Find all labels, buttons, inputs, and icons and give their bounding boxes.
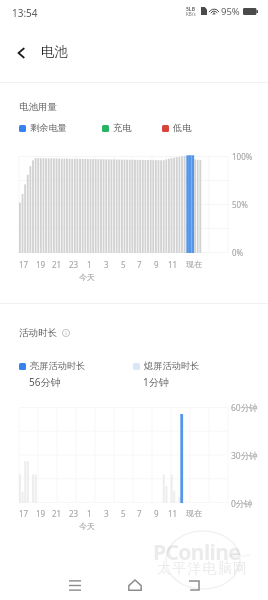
button[interactable]: Back: [179, 570, 209, 600]
staticText: PConline: [153, 538, 241, 567]
staticText: 11: [168, 508, 178, 519]
staticText: KB/s: [186, 11, 196, 17]
staticText: 3: [104, 508, 109, 519]
staticText: 17: [19, 508, 29, 519]
staticText: 现在: [186, 508, 202, 518]
staticText: 亮屏活动时长: [30, 360, 86, 372]
staticText: 13:54: [12, 6, 38, 20]
staticText: 电池用量: [19, 101, 57, 113]
staticText: 30分钟: [231, 450, 258, 462]
staticText: .com.cn: [228, 551, 250, 559]
staticText: 剩余电量: [30, 122, 67, 134]
staticText: 9: [154, 508, 159, 519]
staticText: 19: [36, 259, 46, 270]
staticText: 1: [87, 259, 92, 270]
staticText: 9: [154, 259, 159, 270]
staticText: 7: [137, 508, 142, 519]
staticText: 5LB: [186, 6, 195, 13]
staticText: 3: [104, 259, 109, 270]
staticText: 11: [168, 259, 178, 270]
staticText: 21: [52, 508, 62, 519]
staticText: 50%: [232, 199, 248, 210]
staticText: 95%: [221, 5, 240, 18]
staticText: 今天: [79, 272, 95, 282]
staticText: 活动时长: [19, 327, 57, 339]
staticText: 0%: [232, 247, 244, 258]
staticText: 太平洋电脑网: [157, 560, 249, 578]
staticText: 7: [137, 259, 142, 270]
button[interactable]: Home: [120, 570, 150, 600]
staticText: 电池: [41, 43, 68, 60]
staticText: 21: [52, 259, 62, 270]
staticText: 5: [121, 259, 126, 270]
staticText: 60分钟: [231, 402, 258, 414]
staticText: 1: [87, 508, 92, 519]
staticText: 100%: [232, 151, 253, 162]
staticText: 23: [69, 508, 79, 519]
staticText: 1分钟: [143, 375, 169, 389]
staticText: 0分钟: [231, 498, 253, 510]
staticText: 56分钟: [29, 375, 61, 389]
staticText: 今天: [79, 521, 95, 531]
staticText: 19: [36, 508, 46, 519]
staticText: 17: [19, 259, 29, 270]
staticText: 充电: [113, 122, 132, 134]
staticText: 5: [121, 508, 126, 519]
staticText: 熄屏活动时长: [144, 360, 200, 372]
button[interactable]: Recent apps: [60, 570, 90, 600]
staticText: 低电: [173, 122, 192, 134]
staticText: 23: [69, 259, 79, 270]
button[interactable]: Back: [9, 41, 33, 65]
staticText: 现在: [186, 259, 202, 269]
